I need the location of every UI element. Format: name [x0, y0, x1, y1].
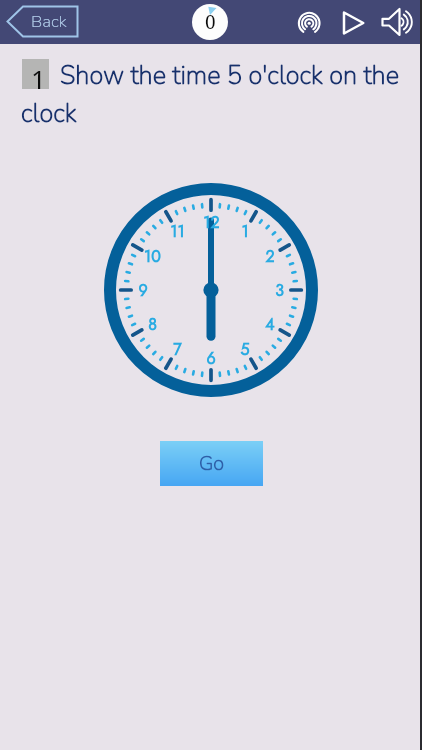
staticText: 8: [148, 313, 157, 336]
button[interactable]: Back: [6, 5, 79, 38]
staticText: Back: [31, 10, 67, 33]
staticText: 3: [275, 279, 284, 302]
button[interactable]: Score: [192, 4, 228, 40]
staticText: 4: [265, 313, 275, 336]
staticText: 1: [31, 61, 46, 91]
staticText: 5: [240, 338, 250, 361]
staticText: 12: [203, 211, 220, 234]
staticText: Show the time 5 o'clock on the: [60, 58, 399, 93]
staticText: 1: [241, 220, 249, 243]
staticText: 9: [138, 279, 148, 302]
staticText: Go: [199, 450, 225, 477]
staticText: 6: [206, 347, 216, 370]
staticText: 0: [205, 9, 216, 35]
button[interactable]: Play: [335, 5, 371, 41]
staticText: 2: [265, 245, 275, 268]
staticText: 7: [173, 338, 182, 361]
staticText: clock: [21, 96, 77, 131]
button[interactable]: Listen: [292, 5, 328, 41]
button[interactable]: Sound: [378, 5, 416, 43]
staticText: 11: [170, 220, 185, 243]
button[interactable]: Go: [160, 441, 263, 486]
staticText: 10: [144, 245, 161, 268]
